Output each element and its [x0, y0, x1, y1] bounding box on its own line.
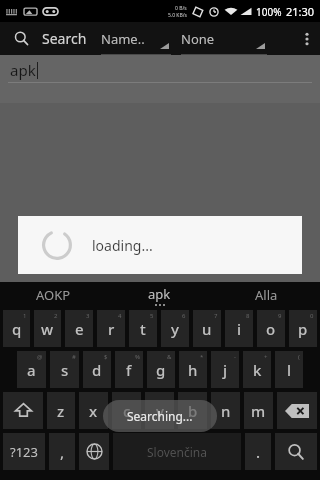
button[interactable]: Alla	[213, 282, 320, 308]
staticText: o	[266, 319, 276, 339]
staticText: 6	[182, 312, 186, 320]
staticText: &	[167, 353, 172, 361]
staticText: s	[61, 360, 69, 380]
button[interactable]: ,	[49, 433, 75, 470]
staticText: Alla	[255, 286, 278, 304]
staticText: i	[237, 319, 242, 339]
button[interactable]: Backspace	[277, 392, 317, 429]
button[interactable]: e	[65, 310, 93, 347]
button[interactable]: i	[225, 310, 253, 347]
staticText: 7	[214, 312, 218, 320]
staticText: x	[89, 401, 98, 421]
button[interactable]: t	[129, 310, 157, 347]
button[interactable]: v	[145, 392, 174, 429]
button[interactable]: AOKP	[0, 282, 106, 308]
staticText: w	[41, 319, 54, 339]
staticText: +	[264, 353, 268, 361]
staticText: loading...	[92, 236, 153, 255]
button[interactable]: Search	[42, 22, 87, 55]
staticText: y	[171, 319, 179, 339]
button[interactable]: h	[179, 351, 207, 388]
button[interactable]: More options	[294, 22, 320, 55]
staticText: 1	[23, 312, 27, 320]
button[interactable]: Slovenčina	[113, 433, 241, 470]
staticText: 21:30	[286, 4, 315, 19]
button[interactable]: p	[289, 310, 317, 347]
button[interactable]: r	[97, 310, 125, 347]
button[interactable]: a	[17, 351, 46, 388]
staticText: 5	[150, 312, 154, 320]
staticText: 0	[310, 312, 314, 320]
button[interactable]: Name..	[101, 22, 171, 55]
staticText: r	[108, 319, 115, 339]
staticText: u	[202, 319, 212, 339]
staticText: @	[37, 353, 43, 361]
staticText: n	[221, 401, 231, 421]
staticText: apk	[10, 60, 36, 80]
button[interactable]: None	[181, 22, 267, 55]
button[interactable]: .	[245, 433, 271, 470]
button[interactable]: y	[161, 310, 189, 347]
staticText: m	[251, 401, 266, 421]
button[interactable]: ?123	[3, 433, 45, 470]
staticText: d	[92, 360, 102, 380]
staticText: k	[253, 360, 262, 380]
button[interactable]: o	[257, 310, 285, 347]
staticText: #	[72, 353, 76, 361]
button[interactable]: Search	[0, 22, 42, 55]
staticText: z	[57, 401, 65, 421]
staticText: 5.0 KB/s	[168, 12, 187, 19]
staticText: l	[287, 360, 292, 380]
button[interactable]: x	[79, 392, 108, 429]
staticText: None	[181, 30, 215, 48]
button[interactable]: u	[193, 310, 221, 347]
button[interactable]: k	[243, 351, 271, 388]
button[interactable]: q	[3, 310, 30, 347]
staticText: v	[156, 401, 164, 421]
staticText: 100%	[256, 5, 282, 19]
button[interactable]: Change language	[79, 433, 109, 470]
staticText: 4	[118, 312, 122, 320]
staticText: (	[298, 353, 300, 361]
staticText: AOKP	[36, 286, 71, 304]
staticText: 9	[278, 312, 282, 320]
staticText: *	[200, 353, 204, 361]
staticText: b	[188, 401, 198, 421]
staticText: h	[188, 360, 198, 380]
staticText: 0 B/s	[175, 5, 187, 12]
button[interactable]: c	[112, 392, 141, 429]
staticText: ,	[60, 442, 65, 462]
staticText: c	[123, 401, 131, 421]
button[interactable]: l	[275, 351, 303, 388]
staticText: -	[234, 353, 236, 361]
staticText: p	[298, 319, 308, 339]
button[interactable]: Shift	[3, 392, 43, 429]
staticText: Name..	[101, 30, 145, 48]
button[interactable]: n	[211, 392, 240, 429]
button[interactable]: apk	[106, 282, 213, 308]
staticText: e	[75, 319, 84, 339]
button[interactable]: m	[244, 392, 273, 429]
button[interactable]: j	[211, 351, 239, 388]
button[interactable]: z	[47, 392, 75, 429]
staticText: t	[140, 319, 146, 339]
staticText: f	[126, 360, 132, 380]
staticText: ?123	[10, 443, 38, 461]
staticText: 3	[86, 312, 90, 320]
staticText: Searching...	[127, 408, 193, 424]
button[interactable]: b	[178, 392, 207, 429]
staticText: apk	[148, 285, 171, 303]
staticText: Slovenčina	[147, 444, 207, 460]
staticText: 2	[54, 312, 58, 320]
staticText: $	[104, 353, 108, 361]
button[interactable]: Search	[275, 433, 317, 470]
button[interactable]: f	[115, 351, 143, 388]
staticText: j	[223, 360, 228, 380]
button[interactable]: g	[147, 351, 175, 388]
button[interactable]: s	[50, 351, 79, 388]
staticText: 8	[246, 312, 250, 320]
staticText: g	[156, 360, 166, 380]
button[interactable]: d	[83, 351, 111, 388]
button[interactable]: w	[34, 310, 61, 347]
staticText: %	[135, 353, 140, 361]
